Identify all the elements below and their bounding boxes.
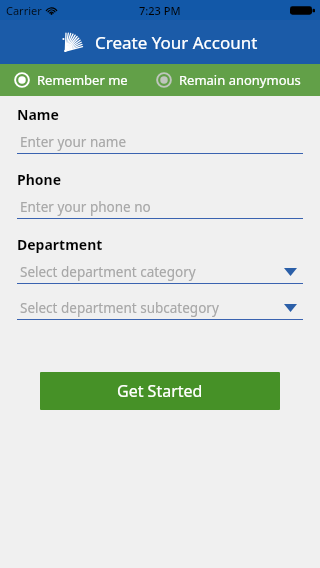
staticText: Select department subcategory bbox=[20, 299, 219, 317]
button[interactable]: Get Started bbox=[40, 372, 280, 410]
staticText: Remember me bbox=[37, 71, 128, 89]
other: Open dropdown bbox=[284, 268, 297, 276]
staticText: Select department category bbox=[20, 263, 196, 281]
staticText: Department bbox=[17, 235, 103, 254]
staticText: Create Your Account bbox=[95, 31, 258, 54]
button[interactable]: Select department category bbox=[17, 262, 303, 284]
button[interactable]: Enter your name bbox=[17, 132, 303, 154]
staticText: Enter your name bbox=[20, 133, 127, 151]
staticText: Remain anonymous bbox=[179, 71, 301, 89]
staticText: Get Started bbox=[117, 380, 203, 402]
button[interactable]: Remember me bbox=[12, 68, 130, 92]
button[interactable]: Enter your phone no bbox=[17, 197, 303, 219]
staticText: Carrier bbox=[6, 3, 42, 18]
staticText: Enter your phone no bbox=[20, 198, 151, 216]
button[interactable]: Remain anonymous bbox=[154, 68, 303, 92]
staticText: Name bbox=[17, 105, 59, 124]
other: Open dropdown bbox=[284, 304, 297, 312]
staticText: Phone bbox=[17, 170, 62, 189]
staticText: 7:23 PM bbox=[139, 3, 181, 18]
button[interactable]: Select department subcategory bbox=[17, 298, 303, 320]
